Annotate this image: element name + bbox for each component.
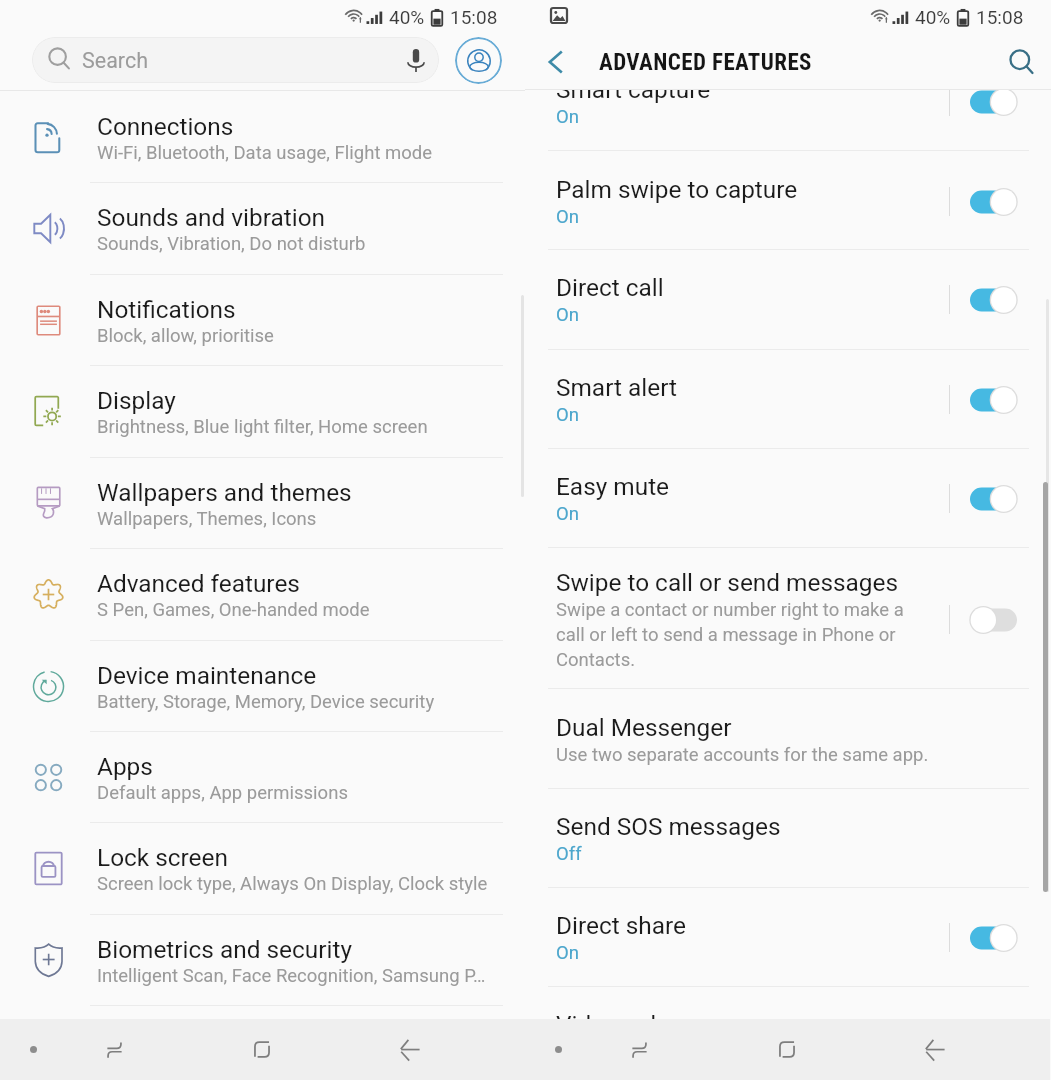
staticText: Advanced features	[97, 569, 300, 598]
staticText: On	[556, 404, 579, 426]
staticText: Direct call	[556, 273, 664, 302]
button[interactable]: Wallpapers and themes	[0, 458, 525, 549]
button[interactable]: Connections	[0, 92, 525, 183]
staticText: Smart alert	[556, 373, 678, 402]
staticText: ADVANCED FEATURES	[599, 49, 812, 76]
button[interactable]: Home	[738, 1019, 835, 1080]
button[interactable]: More options	[525, 1019, 591, 1080]
button[interactable]: Direct call	[525, 250, 1051, 349]
staticText: Palm swipe to capture	[556, 175, 798, 204]
staticText: 40%	[915, 6, 951, 28]
staticText: 15:08	[976, 6, 1024, 28]
staticText: Apps	[97, 752, 153, 781]
staticText: 15:08	[450, 6, 498, 28]
staticText: Swipe to call or send messages	[556, 568, 899, 597]
button[interactable]: Search	[32, 37, 439, 83]
staticText: Search	[82, 48, 149, 73]
button[interactable]: Apps	[0, 732, 525, 823]
staticText: Dual Messenger	[556, 713, 732, 742]
staticText: On	[556, 106, 579, 128]
staticText: Default apps, App permissions	[97, 782, 348, 804]
button[interactable]: Account	[455, 37, 502, 84]
staticText: Direct share	[556, 911, 686, 940]
staticText: Wallpapers, Themes, Icons	[97, 508, 317, 530]
button[interactable]: Direct share	[525, 888, 1051, 987]
button[interactable]: Toggle	[970, 90, 1017, 116]
button[interactable]: More options	[0, 1019, 66, 1080]
button[interactable]: Easy mute	[525, 449, 1051, 548]
button[interactable]: Toggle	[970, 485, 1017, 513]
staticText: Off	[556, 843, 582, 865]
button[interactable]: Recents	[66, 1019, 162, 1080]
staticText: Battery, Storage, Memory, Device securit…	[97, 691, 435, 713]
button[interactable]: Palm swipe to capture	[525, 151, 1051, 251]
staticText: Sounds, Vibration, Do not disturb	[97, 233, 366, 255]
button[interactable]: Notifications	[0, 275, 525, 366]
staticText: Intelligent Scan, Face Recognition, Sams…	[97, 965, 486, 987]
staticText: Use two separate accounts for the same a…	[556, 744, 929, 766]
staticText: 40%	[389, 6, 425, 28]
button[interactable]: Toggle	[970, 188, 1017, 216]
staticText: On	[556, 503, 579, 525]
button[interactable]: Search	[989, 34, 1051, 90]
staticText: Swipe a contact or number right to make …	[556, 599, 915, 670]
staticText: Brightness, Blue light filter, Home scre…	[97, 416, 428, 438]
staticText: Notifications	[97, 295, 236, 324]
staticText: On	[556, 942, 579, 964]
button[interactable]: Sounds and vibration	[0, 183, 525, 274]
staticText: Send SOS messages	[556, 812, 781, 841]
staticText: Sounds and vibration	[97, 203, 326, 232]
staticText: Lock screen	[97, 843, 228, 872]
button[interactable]: Swipe to call or send messages	[525, 548, 1051, 690]
button[interactable]: Video enhancer	[525, 987, 1051, 1019]
button[interactable]: Biometrics and security	[0, 915, 525, 1006]
button[interactable]: Send SOS messages	[525, 789, 1051, 888]
staticText: On	[556, 206, 579, 228]
button[interactable]: Toggle	[970, 606, 1017, 634]
button[interactable]: Smart alert	[525, 350, 1051, 449]
button[interactable]: Back	[525, 34, 586, 90]
staticText: Device maintenance	[97, 661, 317, 690]
button[interactable]: Toggle	[970, 286, 1017, 314]
staticText: Block, allow, prioritise	[97, 325, 274, 347]
button[interactable]: Dual Messenger	[525, 689, 1051, 789]
button[interactable]: Device maintenance	[0, 641, 525, 732]
staticText: Display	[97, 386, 176, 415]
button[interactable]: Lock screen	[0, 823, 525, 914]
staticText: Video enhancer	[556, 1010, 725, 1019]
button[interactable]: Toggle	[970, 924, 1017, 952]
button[interactable]: Back	[886, 1019, 983, 1080]
staticText: Biometrics and security	[97, 935, 352, 964]
staticText: Connections	[97, 112, 234, 141]
staticText: Screen lock type, Always On Display, Clo…	[97, 873, 488, 895]
staticText: On	[556, 304, 579, 326]
button[interactable]: Home	[213, 1019, 310, 1080]
button[interactable]: Advanced features	[0, 549, 525, 640]
staticText: Wallpapers and themes	[97, 478, 352, 507]
button[interactable]: Display	[0, 366, 525, 457]
button[interactable]: Smart capture	[525, 90, 1051, 151]
button[interactable]: Recents	[591, 1019, 687, 1080]
staticText: S Pen, Games, One-handed mode	[97, 599, 370, 621]
staticText: Easy mute	[556, 472, 670, 501]
staticText: Wi-Fi, Bluetooth, Data usage, Flight mod…	[97, 142, 433, 164]
button[interactable]: Back	[361, 1019, 458, 1080]
staticText: Smart capture	[556, 90, 711, 104]
button[interactable]: Toggle	[970, 386, 1017, 414]
